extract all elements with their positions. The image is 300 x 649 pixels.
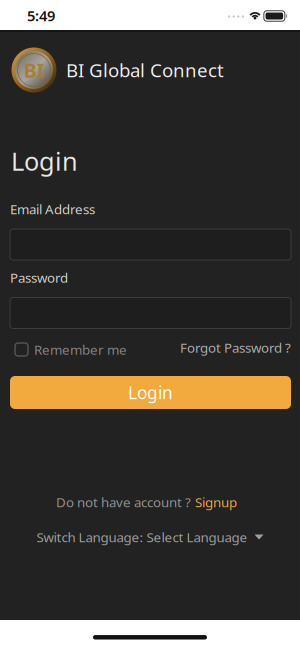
staticText: Email Address: [10, 200, 95, 218]
button[interactable]: Login: [10, 376, 291, 409]
staticText: Forgot Password ?: [180, 339, 291, 356]
staticText: 5:49: [27, 6, 55, 25]
staticText: Switch Language: Select Language: [36, 528, 247, 546]
staticText: BI: [23, 57, 44, 83]
button[interactable]: Forgot Password ?: [180, 341, 291, 358]
staticText: BI Global Connect: [66, 58, 224, 82]
button[interactable]: Do not have account ?: [56, 493, 237, 511]
staticText: Login: [11, 144, 78, 178]
staticText: Remember me: [34, 341, 127, 358]
staticText: Signup: [195, 493, 237, 511]
button[interactable]: Remember me: [10, 341, 127, 358]
staticText: Password: [10, 269, 68, 286]
button[interactable]: Switch Language: Select Language: [36, 528, 263, 546]
staticText: Login: [128, 381, 173, 404]
staticText: Do not have account ?: [56, 493, 191, 511]
button[interactable]: [10, 229, 291, 260]
